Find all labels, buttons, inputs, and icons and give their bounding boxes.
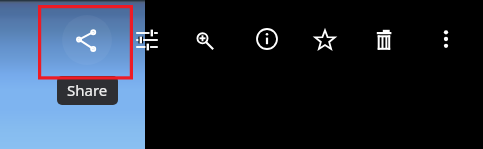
button[interactable]: Delete: [364, 20, 404, 60]
button[interactable]: Zoom in: [184, 19, 224, 59]
button[interactable]: Favorite: [305, 20, 345, 60]
button[interactable]: Share: [62, 16, 110, 64]
button[interactable]: More options: [426, 19, 466, 59]
staticText: Share: [67, 80, 108, 100]
button[interactable]: Tune: [127, 20, 167, 60]
button[interactable]: Info: [247, 19, 287, 59]
